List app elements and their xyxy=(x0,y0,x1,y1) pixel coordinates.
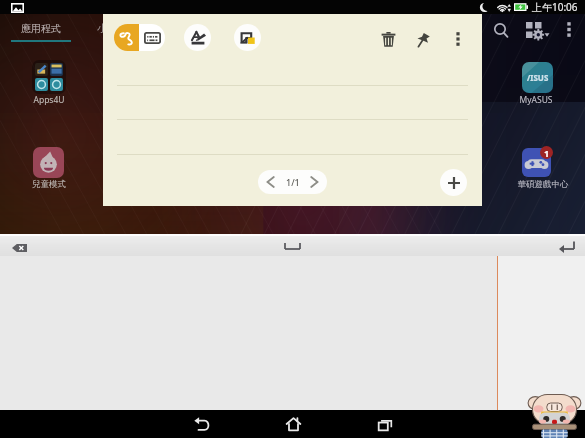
button[interactable]: More options xyxy=(446,27,470,51)
button[interactable]: Search xyxy=(488,20,516,42)
button[interactable]: 應用程式 xyxy=(0,14,82,42)
button[interactable]: Space xyxy=(284,242,301,250)
button[interactable]: More options xyxy=(558,20,580,42)
staticText: Apps4U xyxy=(25,94,73,106)
button[interactable]: Add page xyxy=(440,169,467,196)
button[interactable]: Text style xyxy=(184,24,211,51)
button[interactable]: Kids mode xyxy=(33,147,64,178)
staticText: /ISUS xyxy=(527,72,549,83)
button[interactable]: Back xyxy=(175,410,227,438)
button[interactable]: 1/1 xyxy=(258,170,327,194)
button[interactable]: Pin xyxy=(411,27,435,51)
button[interactable]: Apps4U folder xyxy=(32,60,66,94)
button[interactable]: Note colour xyxy=(234,24,261,51)
button[interactable]: Input mode xyxy=(114,24,165,51)
button[interactable]: Recents xyxy=(359,410,411,438)
button[interactable]: Enter xyxy=(559,241,575,251)
staticText: 應用程式 xyxy=(21,22,61,35)
staticText: 1/1 xyxy=(286,176,300,188)
button[interactable]: App settings xyxy=(520,20,554,42)
button[interactable]: 小工具 xyxy=(82,14,142,42)
staticText: 上午10:06 xyxy=(532,0,578,14)
staticText: 1 xyxy=(544,147,550,159)
button[interactable]: Delete xyxy=(376,27,400,51)
button[interactable]: MyASUS xyxy=(522,62,553,93)
staticText: 小工具 xyxy=(97,22,127,35)
button[interactable]: Backspace xyxy=(12,244,27,252)
button[interactable]: ASUS Game Center xyxy=(522,148,551,177)
staticText: 兒童模式 xyxy=(22,179,76,190)
staticText: 華碩遊戲中心 xyxy=(503,179,583,190)
button[interactable]: Home xyxy=(267,410,319,438)
staticText: MyASUS xyxy=(512,94,560,106)
